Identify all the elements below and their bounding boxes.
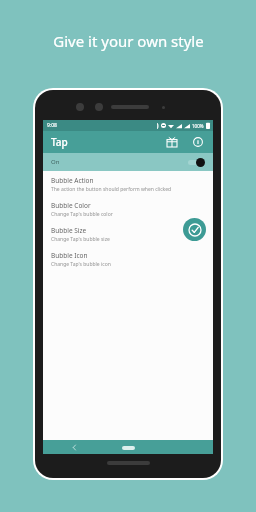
staticText: Change Tap's bubble color: [51, 211, 113, 218]
button[interactable]: Bubble Icon: [43, 246, 213, 271]
button[interactable]: Apply: [183, 218, 206, 241]
staticText: Tap: [51, 135, 68, 149]
staticText: Bubble Action: [51, 176, 94, 185]
staticText: Bubble Size: [51, 226, 87, 235]
button[interactable]: Bubble Action: [43, 171, 213, 196]
staticText: The action the button should perform whe…: [51, 186, 172, 193]
staticText: 100%: [192, 123, 204, 129]
staticText: Bubble Color: [51, 201, 91, 210]
staticText: 9:08: [47, 122, 57, 129]
button[interactable]: Home: [120, 444, 136, 451]
staticText: Bubble Icon: [51, 251, 88, 260]
staticText: Change Tap's bubble size: [51, 236, 110, 243]
button[interactable]: On: [43, 153, 213, 171]
button[interactable]: Bubble Color: [43, 196, 213, 221]
staticText: Change Tap's bubble icon: [51, 261, 111, 268]
button[interactable]: Gift: [164, 134, 180, 150]
button[interactable]: Back: [69, 442, 79, 452]
staticText: Give it your own style: [53, 31, 204, 51]
button[interactable]: Info: [190, 134, 206, 150]
staticText: On: [51, 158, 60, 166]
button[interactable]: Bubble Size: [43, 221, 213, 246]
